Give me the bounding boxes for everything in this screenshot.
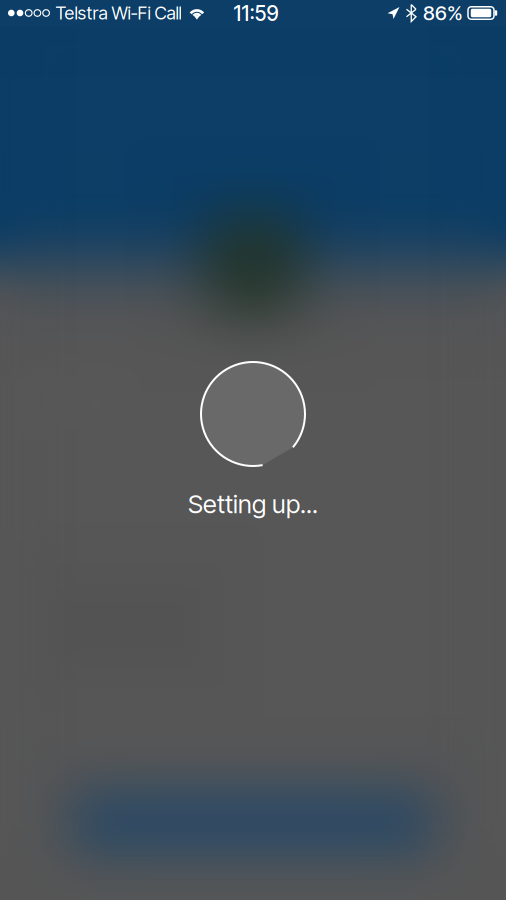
staticText: 86% — [423, 1, 463, 25]
staticText: 11:59 — [233, 1, 278, 26]
staticText: Setting up... — [188, 489, 318, 519]
staticText: Telstra Wi-Fi Call — [55, 2, 181, 24]
